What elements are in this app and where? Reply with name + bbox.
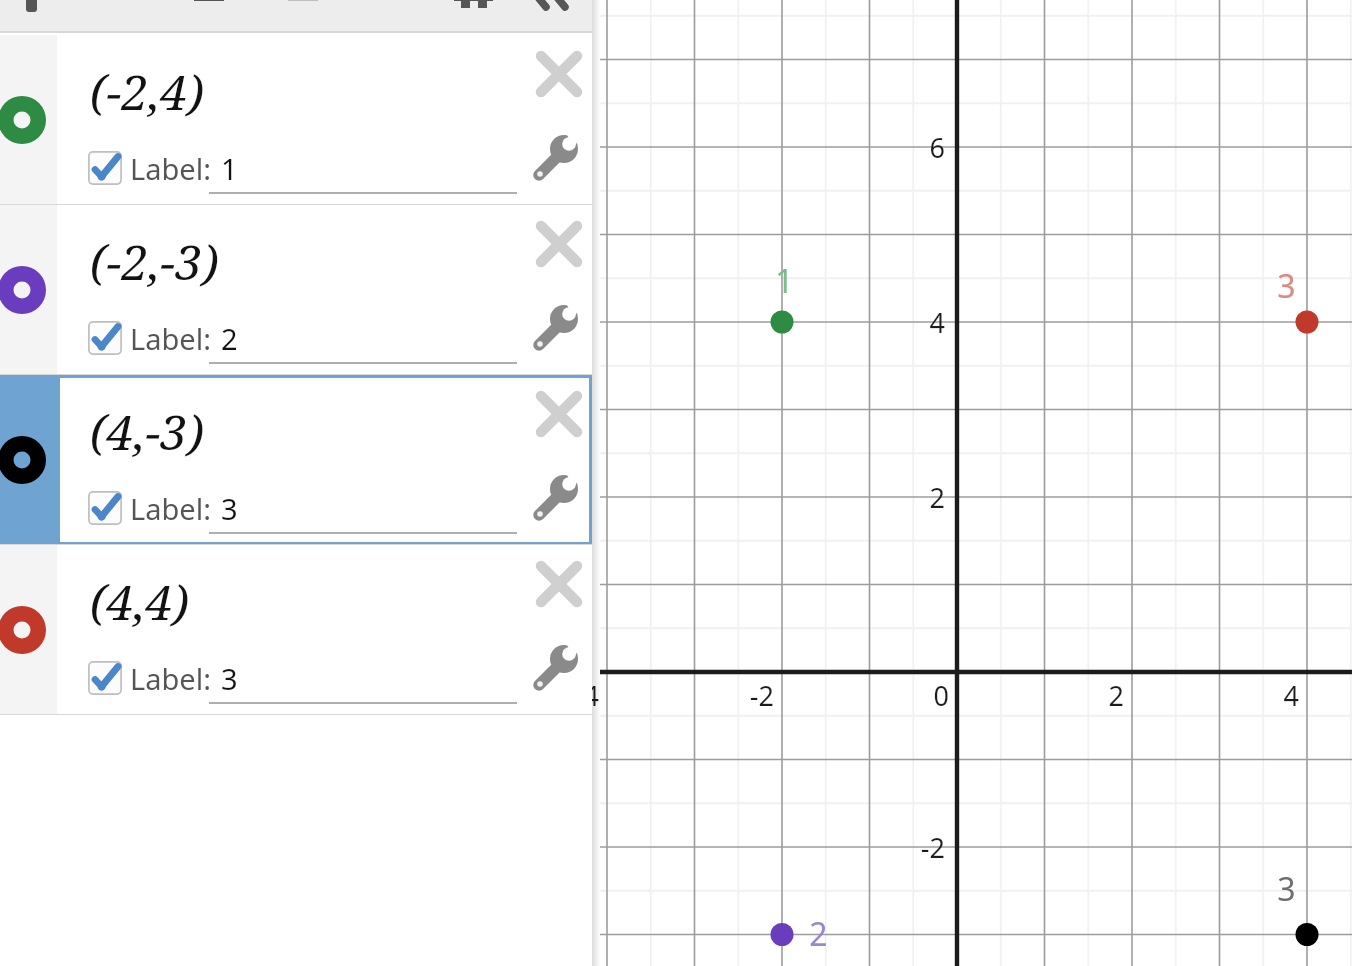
staticText: -4 <box>574 677 599 714</box>
staticText: 4 <box>1283 677 1299 714</box>
staticText: 1 <box>221 149 238 188</box>
button[interactable]: Settings <box>527 471 581 525</box>
button[interactable]: Delete <box>531 216 587 272</box>
button[interactable]: Toggle point visibility <box>0 375 57 545</box>
button[interactable]: Toggle point visibility <box>0 545 57 715</box>
button[interactable]: Toggle point visibility <box>0 35 57 205</box>
button[interactable]: Toggle point visibility <box>0 375 592 545</box>
button[interactable]: Toggle point visibility <box>0 205 57 375</box>
staticText: (−2,−3) <box>90 229 219 294</box>
staticText: (−2,4) <box>90 59 204 124</box>
staticText: (4,4) <box>90 569 189 634</box>
button[interactable]: Show label <box>88 491 122 525</box>
staticText: 2 <box>809 912 828 956</box>
staticText: 2 <box>1108 677 1124 714</box>
staticText: 3 <box>1277 867 1296 911</box>
button[interactable]: Show label <box>88 151 122 185</box>
staticText: 0 <box>933 677 949 714</box>
button[interactable]: Delete <box>531 556 587 612</box>
button[interactable]: Delete <box>531 46 587 102</box>
button[interactable]: Toggle point visibility <box>0 205 592 375</box>
button[interactable]: Settings <box>527 301 581 355</box>
staticText: -2 <box>920 829 945 866</box>
staticText: -2 <box>749 677 774 714</box>
button[interactable]: Toggle point visibility <box>0 545 592 715</box>
staticText: Label: <box>130 149 211 188</box>
staticText: 2 <box>221 319 238 358</box>
staticText: Label: <box>130 319 211 358</box>
button[interactable]: Settings <box>527 641 581 695</box>
staticText: 1 <box>775 259 794 303</box>
button[interactable]: Delete <box>531 386 587 442</box>
staticText: 2 <box>929 479 945 516</box>
staticText: Label: <box>130 489 211 528</box>
staticText: 6 <box>929 129 945 166</box>
staticText: 3 <box>221 489 238 528</box>
button[interactable]: Show label <box>88 321 122 355</box>
staticText: Label: <box>130 659 211 698</box>
staticText: 4 <box>929 304 945 341</box>
button[interactable]: Toggle point visibility <box>0 35 592 205</box>
staticText: 3 <box>1277 264 1296 308</box>
staticText: 3 <box>221 659 238 698</box>
button[interactable]: Show label <box>88 661 122 695</box>
staticText: (4,−3) <box>90 399 204 464</box>
button[interactable]: Settings <box>527 131 581 185</box>
